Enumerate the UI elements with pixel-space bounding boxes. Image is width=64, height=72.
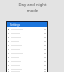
button[interactable] — [7, 39, 47, 43]
staticText: Settings — [10, 23, 20, 27]
button[interactable] — [7, 35, 47, 39]
button[interactable] — [7, 63, 47, 67]
button[interactable] — [7, 51, 47, 55]
button[interactable]: Settings — [7, 22, 47, 27]
button[interactable] — [7, 67, 47, 71]
button[interactable] — [7, 27, 47, 31]
button[interactable] — [7, 55, 47, 59]
button[interactable] — [7, 71, 47, 72]
staticText: Day and night mode — [18, 2, 47, 13]
button[interactable] — [7, 47, 47, 51]
button[interactable] — [7, 59, 47, 63]
button[interactable] — [7, 31, 47, 35]
button[interactable] — [7, 43, 47, 47]
